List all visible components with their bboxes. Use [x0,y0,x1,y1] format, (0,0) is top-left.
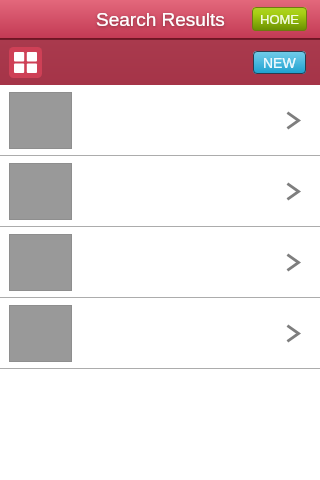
button[interactable] [0,298,320,368]
staticText: NEW [263,55,296,71]
button[interactable] [0,227,320,297]
button[interactable] [0,156,320,226]
staticText: HOME [260,12,299,27]
button[interactable] [0,85,320,155]
button[interactable]: NEW [253,51,306,74]
button[interactable]: Grid view [9,47,42,78]
staticText: Search Results [96,9,225,30]
button[interactable]: HOME [252,7,307,31]
